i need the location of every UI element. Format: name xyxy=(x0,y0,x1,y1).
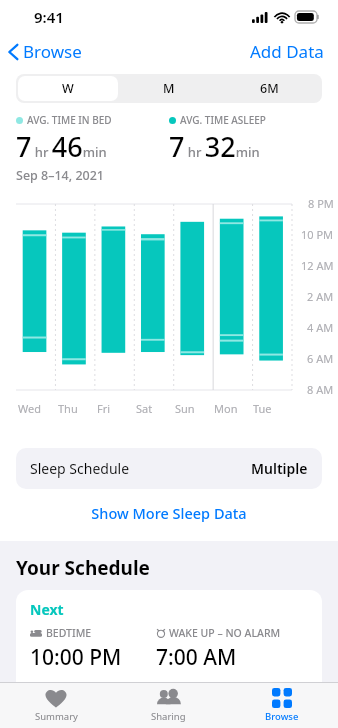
staticText: 9:41 xyxy=(34,7,64,27)
staticText: Sharing xyxy=(151,710,186,723)
staticText: Your Schedule xyxy=(16,555,150,581)
staticText: BEDTIME xyxy=(46,626,92,640)
staticText: 7 hr 46min xyxy=(16,128,107,165)
button[interactable]: W xyxy=(18,76,118,101)
staticText: 12 AM xyxy=(301,258,334,273)
button[interactable]: Add Data xyxy=(236,35,338,68)
staticText: 2 AM xyxy=(307,289,334,304)
staticText: Add Data xyxy=(250,40,324,63)
button[interactable]: Sleep Schedule xyxy=(16,448,322,489)
staticText: Show More Sleep Data xyxy=(91,503,247,523)
button[interactable]: Sharing xyxy=(112,683,225,728)
staticText: 6M xyxy=(260,80,279,97)
staticText: WAKE UP – NO ALARM xyxy=(169,626,281,640)
button[interactable]: Summary xyxy=(0,683,112,728)
staticText: W xyxy=(62,80,74,97)
staticText: 7:00 AM xyxy=(156,643,308,672)
button[interactable]: Next xyxy=(16,590,322,682)
staticText: Next xyxy=(30,600,64,619)
staticText: Tue xyxy=(253,401,272,416)
staticText: 8 AM xyxy=(307,382,334,396)
staticText: Sep 8–14, 2021 xyxy=(16,167,105,184)
staticText: 4 AM xyxy=(307,320,334,335)
staticText: M xyxy=(163,80,175,97)
staticText: 7 hr 32min xyxy=(169,128,260,165)
button[interactable]: Browse xyxy=(0,36,90,67)
staticText: 8 PM xyxy=(308,196,334,211)
staticText: Summary xyxy=(35,710,78,723)
staticText: Sat xyxy=(136,401,153,416)
staticText: Sleep Schedule xyxy=(30,459,130,478)
staticText: Fri xyxy=(97,401,111,416)
staticText: 6 AM xyxy=(307,351,334,366)
button[interactable]: M xyxy=(118,76,219,101)
staticText: Browse xyxy=(23,40,82,63)
staticText: 10 PM xyxy=(301,227,334,242)
staticText: Multiple xyxy=(251,459,308,478)
button[interactable]: Browse xyxy=(225,683,338,728)
staticText: Thu xyxy=(58,401,78,416)
staticText: Sun xyxy=(175,401,195,416)
staticText: AVG. TIME ASLEEP xyxy=(180,113,266,127)
staticText: Browse xyxy=(265,710,299,723)
button[interactable]: Show More Sleep Data xyxy=(0,499,338,527)
staticText: Wed xyxy=(18,401,41,416)
button[interactable]: 6M xyxy=(219,76,320,101)
staticText: 10:00 PM xyxy=(30,643,156,672)
staticText: AVG. TIME IN BED xyxy=(27,113,112,127)
staticText: Mon xyxy=(214,401,238,416)
